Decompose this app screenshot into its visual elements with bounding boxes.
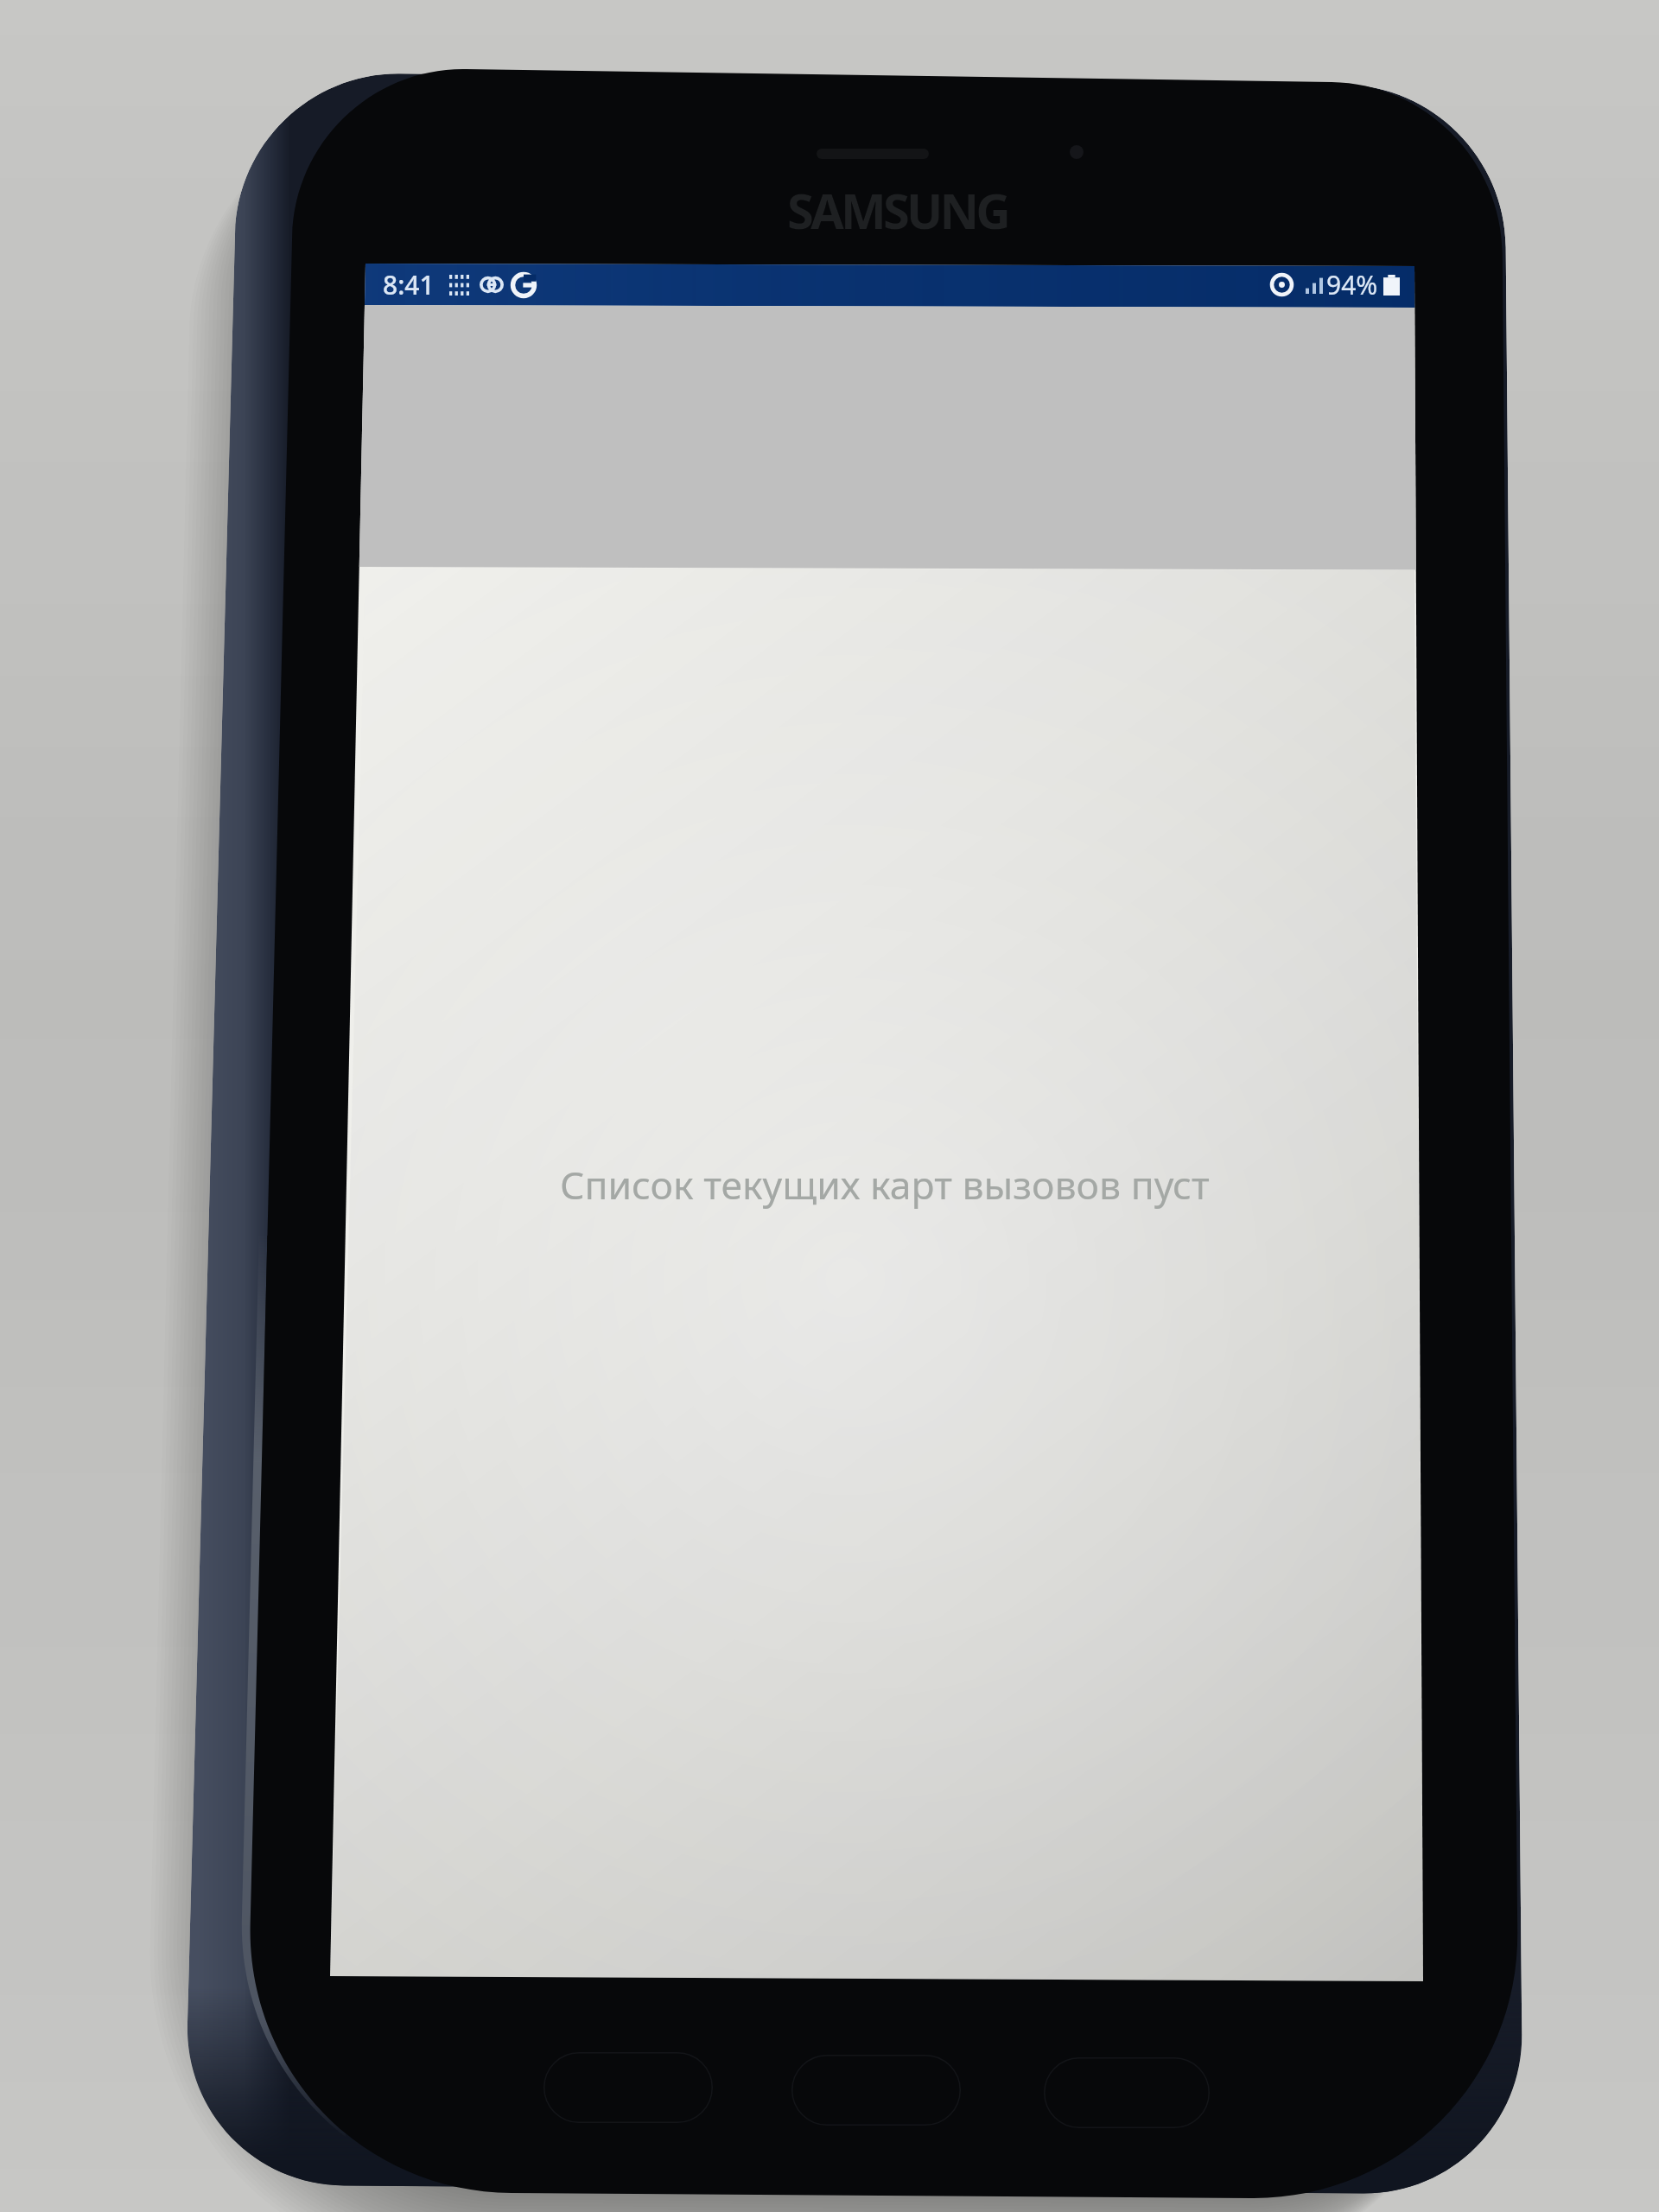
staticText: 8:41 bbox=[383, 267, 435, 302]
staticText: SAMSUNG bbox=[787, 177, 1008, 243]
button[interactable]: Toolbar bbox=[346, 305, 1417, 567]
button[interactable]: Список текущих карт вызовов пуст bbox=[346, 568, 1417, 1976]
staticText: 94% bbox=[1326, 267, 1378, 302]
staticText: Список текущих карт вызовов пуст bbox=[560, 1158, 1210, 1211]
